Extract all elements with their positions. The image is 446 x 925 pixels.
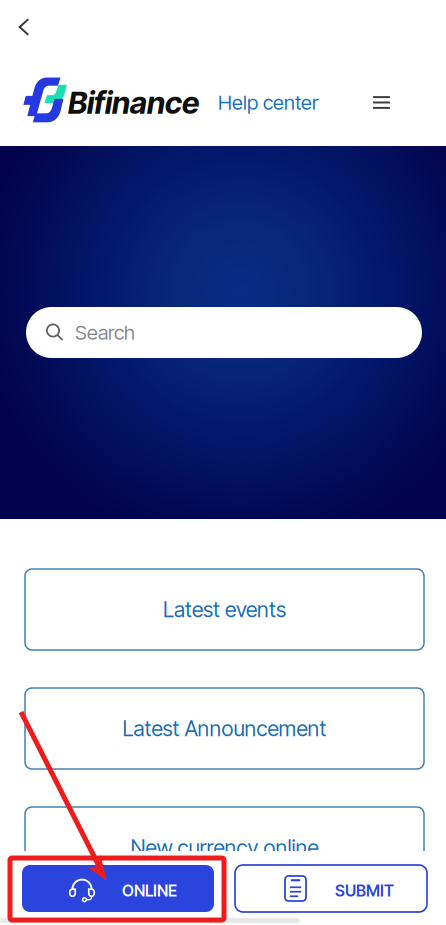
button[interactable]: SUBMIT	[235, 865, 427, 912]
button[interactable]: ONLINE	[22, 865, 214, 912]
button[interactable]: Latest Announcement	[25, 688, 424, 769]
staticText: Search	[75, 320, 135, 345]
staticText: Help center	[218, 90, 319, 115]
staticText: Bifinance	[68, 84, 199, 121]
button[interactable]: Latest events	[25, 569, 424, 650]
staticText: SUBMIT	[335, 881, 394, 900]
button[interactable]: Help center	[199, 78, 338, 127]
button[interactable]: New currency online	[25, 807, 424, 888]
button[interactable]: Menu	[355, 80, 446, 125]
button[interactable]: Back	[0, 0, 49, 52]
button[interactable]: Search	[26, 307, 422, 358]
staticText: Latest Announcement	[122, 716, 326, 741]
staticText: ONLINE	[122, 881, 177, 900]
staticText: New currency online	[130, 835, 318, 860]
staticText: Latest events	[163, 597, 286, 622]
